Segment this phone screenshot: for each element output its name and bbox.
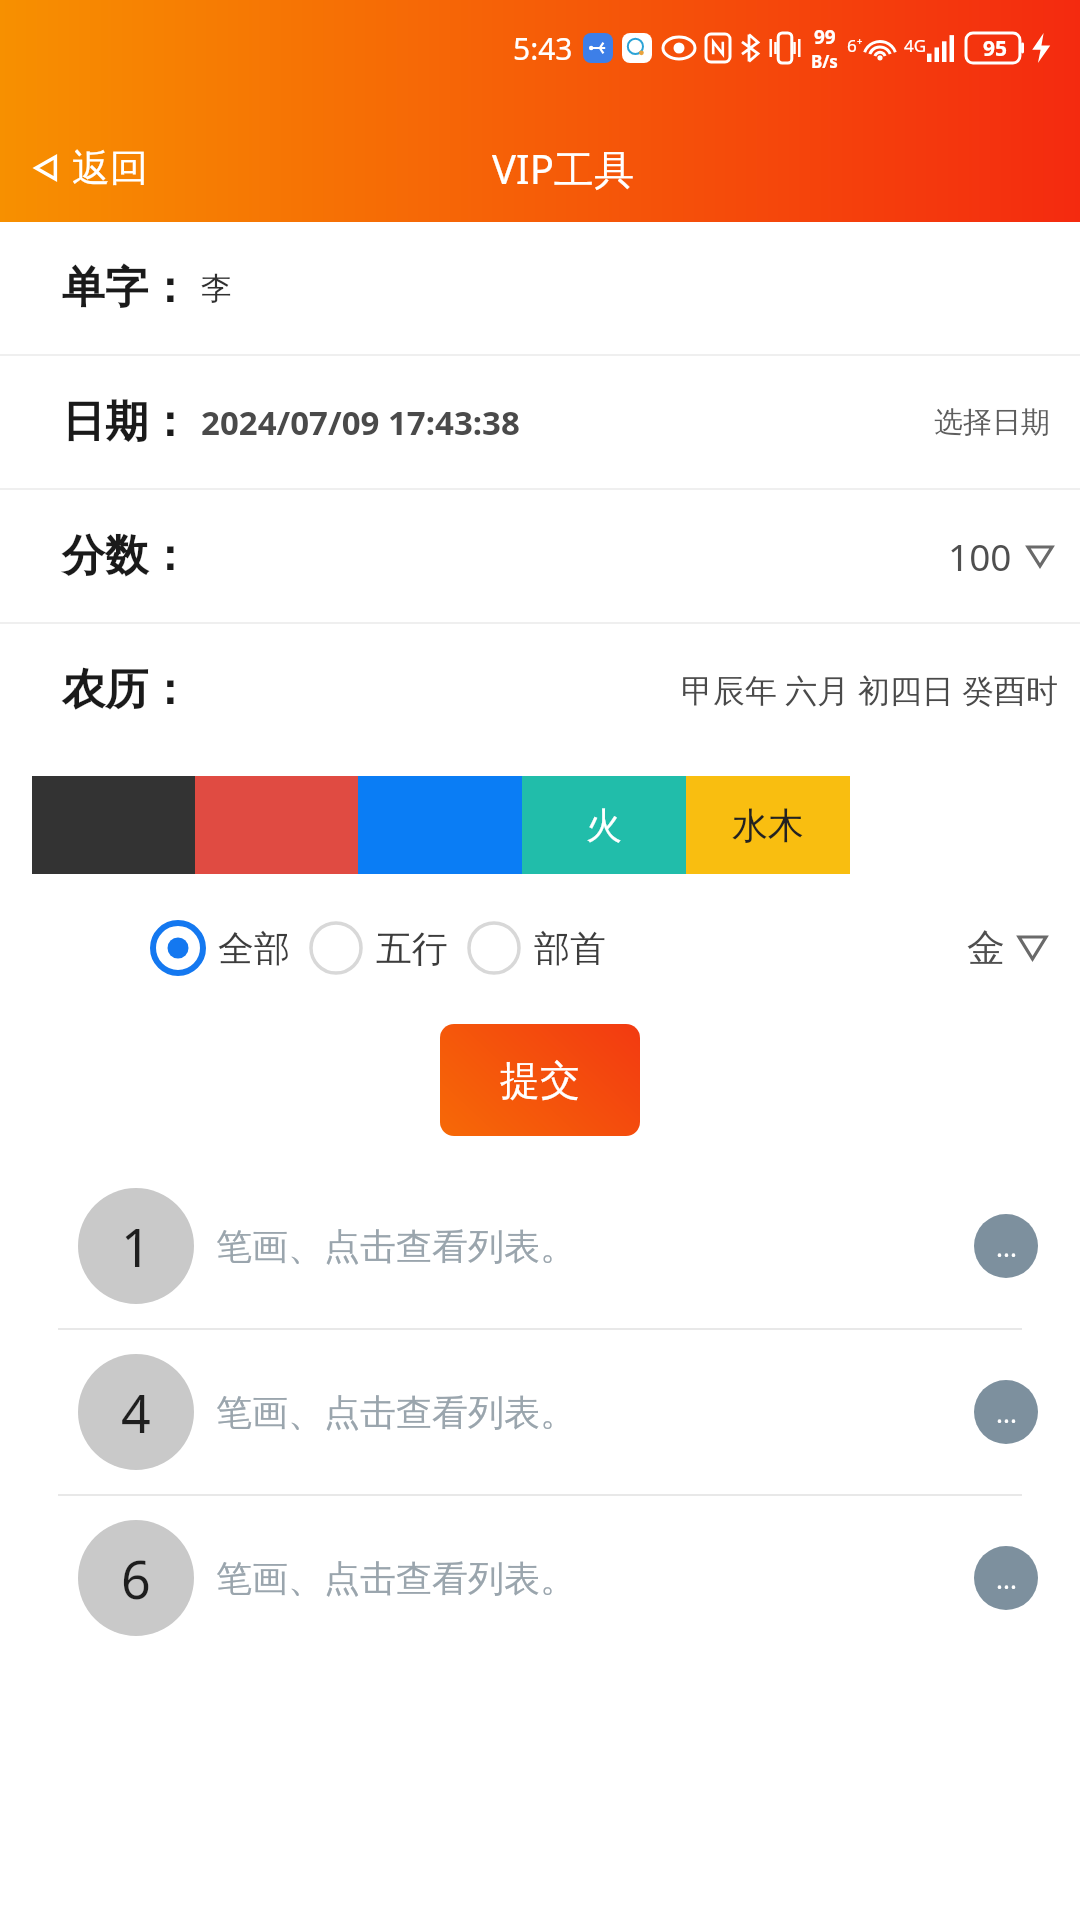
button[interactable]: 更多: [974, 1214, 1038, 1278]
button[interactable]: 金: [961, 918, 1052, 978]
staticText: 返回: [72, 144, 148, 192]
staticText: 6: [121, 1543, 151, 1614]
staticText: 笔画、点击查看列表。: [216, 1390, 576, 1435]
staticText: 五行: [376, 926, 448, 971]
staticText: 5:43: [513, 28, 573, 69]
button[interactable]: 全部: [150, 914, 290, 982]
staticText: 笔画、点击查看列表。: [216, 1224, 576, 1269]
staticText: 4G: [904, 34, 927, 57]
staticText: 95: [983, 34, 1008, 63]
staticText: VIP工具: [492, 141, 634, 196]
staticText: 全部: [218, 926, 290, 971]
staticText: 2024/07/09 17:43:38: [201, 400, 520, 445]
button[interactable]: 单字：: [0, 222, 1080, 354]
button[interactable]: 五行: [308, 914, 448, 982]
button[interactable]: 4: [0, 1330, 1080, 1494]
button[interactable]: 日期：: [0, 356, 1080, 488]
button[interactable]: 6: [0, 1496, 1080, 1660]
staticText: 火: [586, 803, 622, 848]
staticText: 日期：: [62, 395, 191, 449]
staticText: 水木: [732, 803, 804, 848]
button[interactable]: 100: [942, 525, 1058, 587]
staticText: 甲辰年 六月 初四日 癸酉时: [681, 668, 1058, 712]
staticText: 1: [121, 1211, 151, 1282]
button[interactable]: 1: [0, 1164, 1080, 1328]
staticText: 100: [948, 531, 1012, 581]
button[interactable]: 更多: [974, 1380, 1038, 1444]
staticText: 6⁺: [847, 34, 863, 57]
staticText: 金: [967, 924, 1005, 972]
button[interactable]: 提交: [440, 1024, 640, 1136]
staticText: 李: [201, 269, 232, 308]
staticText: 笔画、点击查看列表。: [216, 1556, 576, 1601]
button[interactable]: 火: [522, 776, 686, 874]
button[interactable]: 部首: [466, 914, 606, 982]
staticText: B/s: [811, 50, 838, 73]
button[interactable]: 选择日期: [926, 398, 1058, 447]
staticText: ...: [996, 1395, 1017, 1430]
staticText: 单字：: [62, 261, 191, 315]
staticText: 分数：: [62, 529, 191, 583]
button[interactable]: 农历：: [0, 624, 1080, 756]
button[interactable]: 返回: [0, 136, 162, 200]
staticText: 选择日期: [934, 404, 1050, 441]
staticText: 农历：: [62, 663, 191, 717]
staticText: 4: [121, 1377, 151, 1448]
button[interactable]: 水木: [686, 776, 850, 874]
staticText: 99: [814, 24, 836, 50]
staticText: ...: [996, 1229, 1017, 1264]
button[interactable]: 更多: [974, 1546, 1038, 1610]
staticText: 提交: [500, 1055, 580, 1105]
button[interactable]: 分数：: [0, 490, 1080, 622]
staticText: ...: [996, 1561, 1017, 1596]
staticText: 部首: [534, 926, 606, 971]
